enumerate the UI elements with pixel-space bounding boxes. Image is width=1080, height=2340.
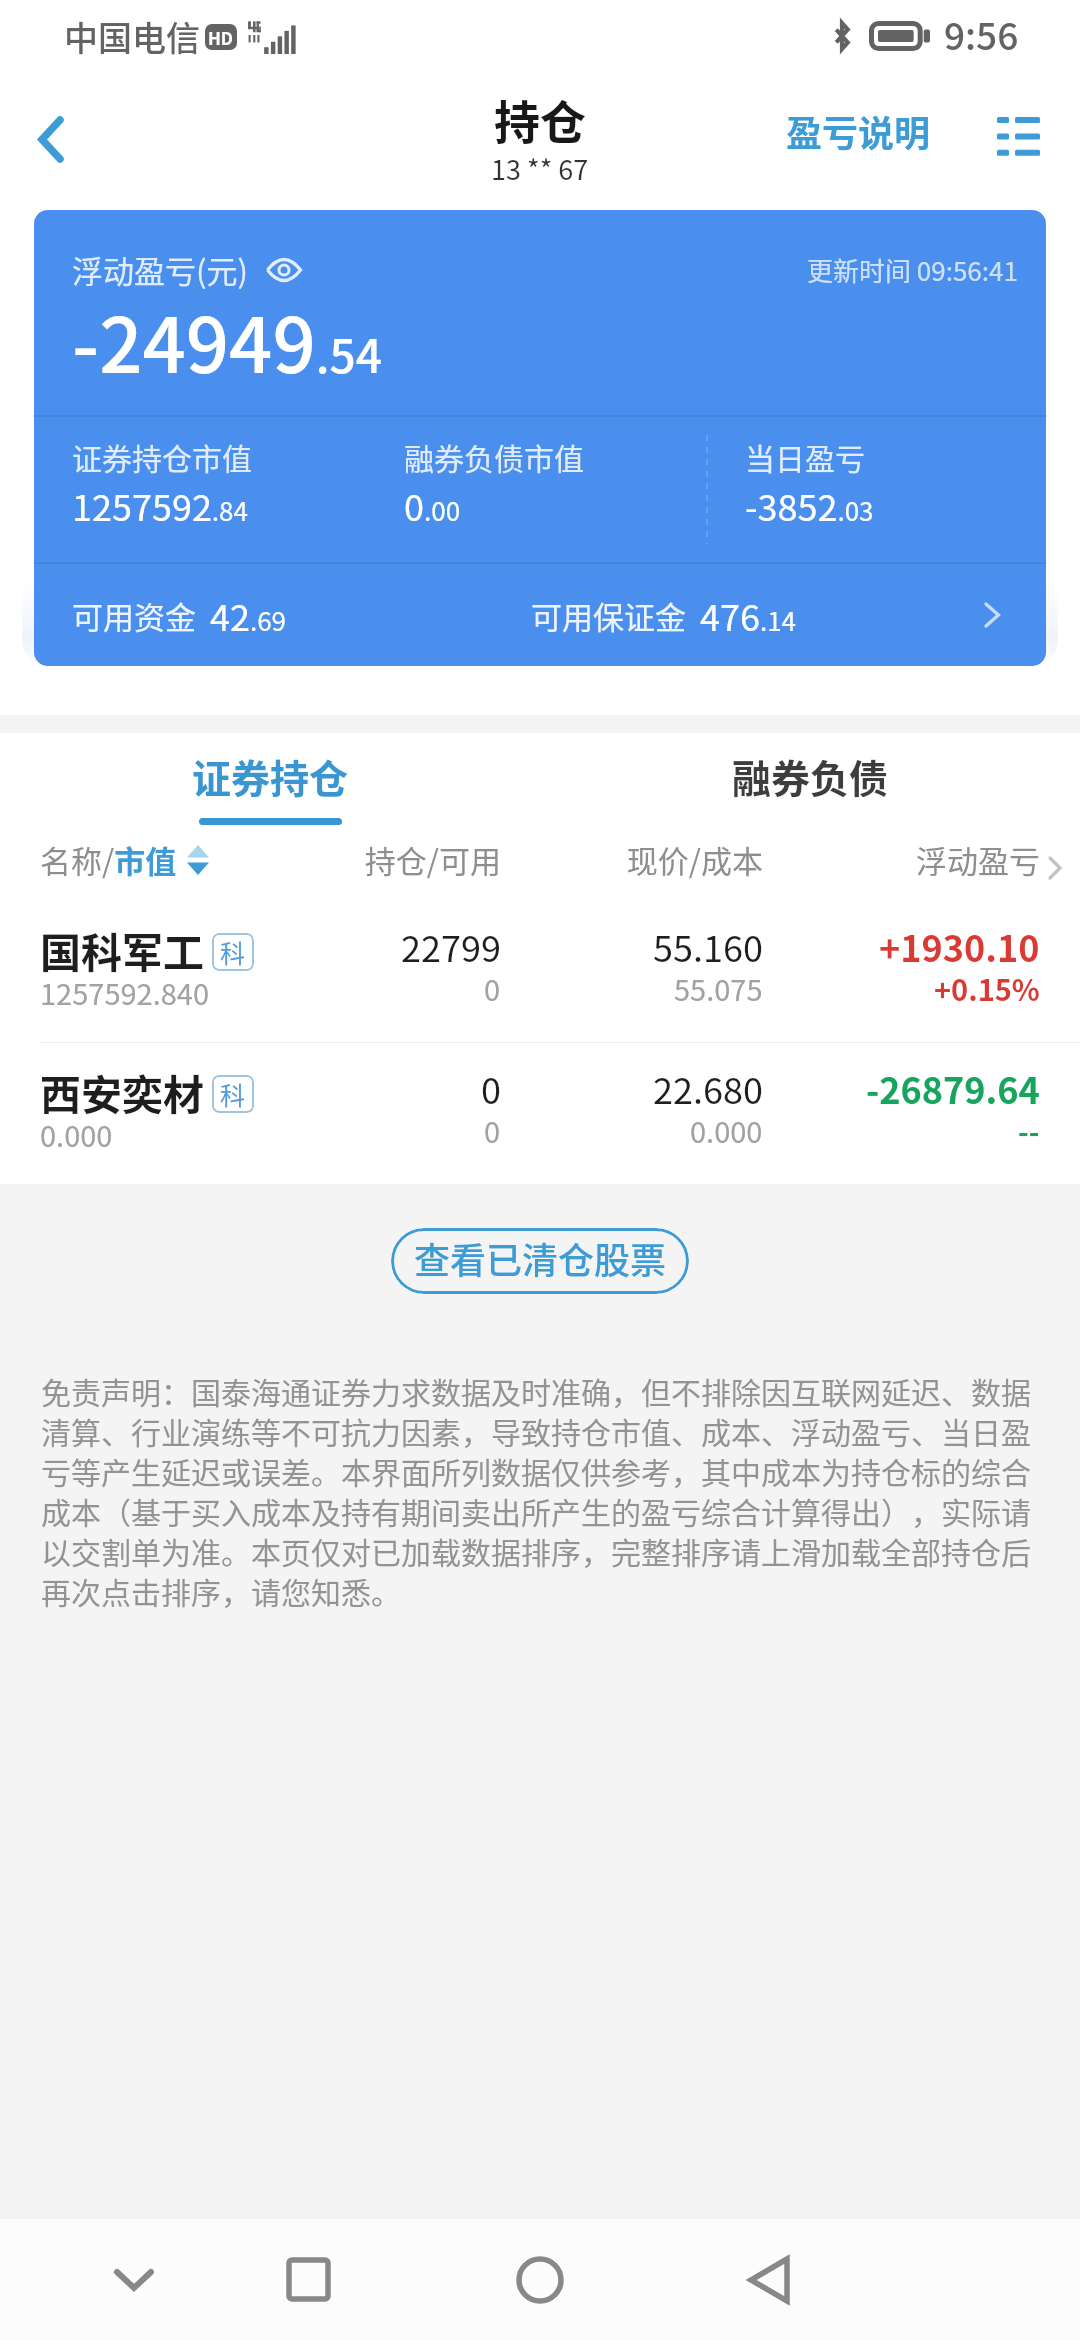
button[interactable]: Recent apps — [258, 2219, 358, 2340]
button[interactable]: 证券持仓 — [0, 733, 540, 835]
staticText: 浮动盈亏 — [763, 837, 1040, 882]
staticText: 证券持仓 — [192, 748, 349, 804]
staticText: 融券负债市值 — [404, 435, 584, 478]
staticText: 查看已清仓股票 — [414, 1232, 667, 1284]
staticText: 科 — [220, 934, 246, 970]
button[interactable]: 盈亏说明 — [780, 112, 937, 188]
staticText: 现价/成本 — [501, 837, 763, 882]
staticText: 免责声明：国泰海通证券力求数据及时准确，但不排除因互联网延迟、数据清算、行业演练… — [41, 1369, 1042, 1613]
button[interactable]: Switch list layout — [980, 118, 1044, 182]
staticText: -26879.64 — [866, 1062, 1040, 1114]
staticText: 当日盈亏 — [745, 435, 865, 478]
button[interactable]: 查看已清仓股票 — [391, 1228, 689, 1294]
button[interactable]: 西安奕材 — [0, 1043, 1080, 1184]
staticText: 0 — [484, 967, 501, 1009]
staticText: 55.160 — [653, 920, 763, 972]
staticText: 1257592.840 — [40, 971, 210, 1013]
staticText: 9:56 — [944, 7, 1019, 61]
staticText: 476.14 — [700, 589, 797, 641]
staticText: 西安奕材 — [40, 1062, 204, 1121]
button[interactable]: 国科军工 — [0, 901, 1080, 1042]
button[interactable]: More columns — [1042, 855, 1068, 881]
staticText: -- — [1018, 1109, 1040, 1151]
staticText: 42.69 — [210, 589, 287, 641]
staticText: +0.15% — [934, 967, 1040, 1009]
staticText: 22799 — [401, 920, 501, 972]
staticText: -24949.54 — [72, 285, 382, 395]
staticText: 持仓 — [494, 86, 586, 153]
staticText: 0.000 — [690, 1109, 763, 1151]
staticText: 可用资金 — [72, 593, 196, 638]
staticText: 浮动盈亏(元) — [72, 247, 248, 292]
button[interactable]: 浮动盈亏(元) — [34, 210, 1046, 666]
staticText: 22.680 — [653, 1062, 763, 1114]
staticText: 55.075 — [674, 967, 763, 1009]
staticText: 中国电信 — [64, 12, 200, 61]
staticText: 0.00 — [404, 479, 461, 531]
button[interactable]: Back — [0, 95, 110, 205]
staticText: 0.000 — [40, 1113, 113, 1155]
button[interactable]: 融券负债 — [540, 733, 1080, 835]
staticText: 0 — [484, 1109, 501, 1151]
staticText: 可用保证金 — [531, 593, 686, 638]
staticText: -3852.03 — [745, 479, 874, 531]
button[interactable]: Home — [490, 2219, 590, 2340]
staticText: 证券持仓市值 — [72, 435, 252, 478]
staticText: 融券负债 — [732, 748, 889, 804]
staticText: 盈亏说明 — [786, 105, 931, 157]
staticText: +1930.10 — [879, 920, 1040, 972]
staticText: 更新时间 09:56:41 — [807, 251, 1018, 289]
staticText: 名称/市值 — [40, 837, 177, 882]
button[interactable]: Back — [719, 2219, 819, 2340]
staticText: 科 — [220, 1076, 246, 1112]
staticText: 0 — [481, 1062, 501, 1114]
staticText: 13 ** 67 — [491, 149, 589, 188]
staticText: 国科军工 — [40, 920, 204, 979]
staticText: HD — [208, 25, 234, 50]
staticText: 1257592.84 — [72, 479, 248, 531]
button[interactable]: Hide keyboard — [84, 2219, 184, 2340]
staticText: 持仓/可用 — [295, 837, 501, 882]
